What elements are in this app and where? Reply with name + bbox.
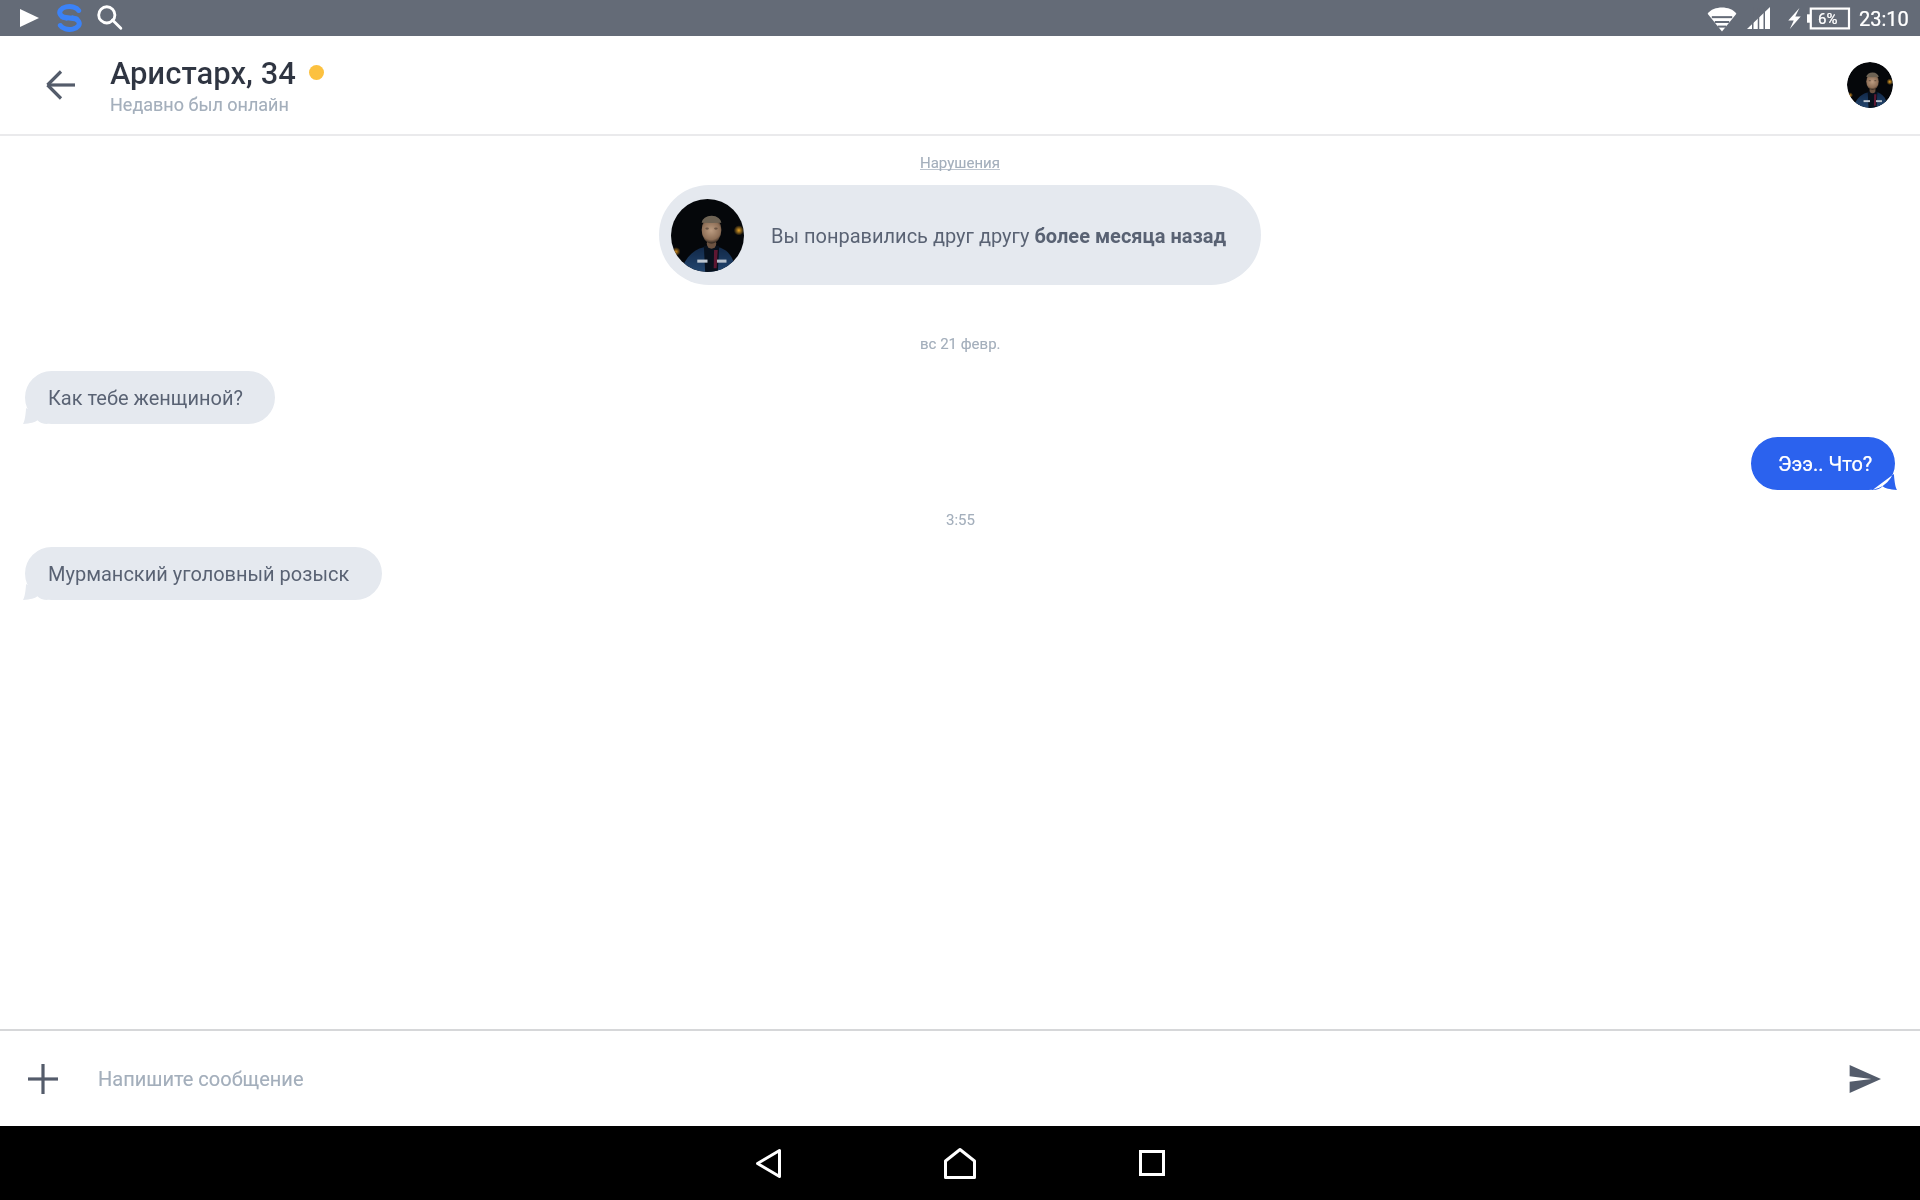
button[interactable]: Send (1822, 1031, 1907, 1126)
button[interactable]: Вы понравились друг другу более месяца н… (659, 185, 1261, 285)
button[interactable]: Эээ.. Что? (1751, 437, 1897, 490)
button[interactable]: Нарушения (914, 152, 1006, 174)
staticText: Вы понравились друг другу более месяца н… (771, 224, 1227, 247)
staticText: Как тебе женщиной? (48, 386, 243, 409)
button[interactable]: Profile photo (1847, 62, 1893, 108)
staticText: Мурманский уголовный розыск (48, 562, 350, 585)
button[interactable]: Add attachment (0, 1031, 85, 1126)
button[interactable]: Как тебе женщиной? (23, 371, 275, 424)
button[interactable]: Back (672, 1126, 864, 1200)
staticText: 6% (1818, 10, 1838, 28)
staticText: Эээ.. Что? (1778, 452, 1873, 475)
button[interactable]: Home (864, 1126, 1056, 1200)
button[interactable]: Мурманский уголовный розыск (23, 547, 382, 600)
staticText: Нарушения (920, 154, 1000, 172)
staticText: Аристарх, 34 (110, 55, 296, 91)
staticText: вс 21 февр. (920, 335, 1001, 353)
staticText: Напишите сообщение (98, 1067, 304, 1090)
staticText: 23:10 (1859, 7, 1909, 30)
button[interactable]: Recent apps (1056, 1126, 1248, 1200)
button[interactable]: Back (0, 36, 110, 134)
staticText: Недавно был онлайн (110, 94, 289, 115)
staticText: 3:55 (946, 511, 975, 529)
